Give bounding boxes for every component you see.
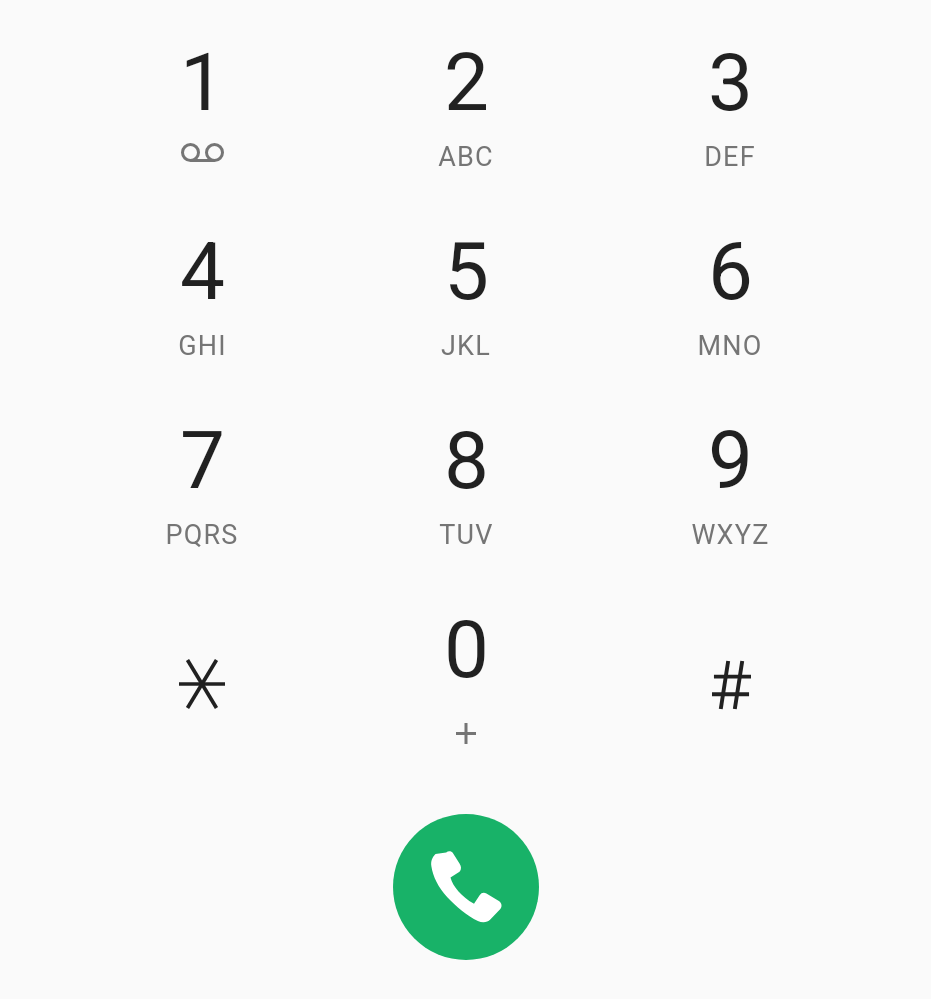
button[interactable]: 1 bbox=[70, 25, 334, 214]
button[interactable]: Pound bbox=[598, 592, 862, 781]
other: Voicemail bbox=[181, 143, 224, 162]
staticText: MNO bbox=[697, 330, 763, 362]
staticText: 9 bbox=[708, 414, 753, 508]
button[interactable]: 3 bbox=[598, 25, 862, 214]
staticText: 5 bbox=[444, 225, 489, 319]
staticText: DEF bbox=[704, 141, 756, 173]
staticText: 2 bbox=[444, 36, 489, 130]
button[interactable]: Call bbox=[393, 814, 539, 960]
staticText: PQRS bbox=[165, 519, 239, 551]
button[interactable]: Star bbox=[70, 592, 334, 781]
other: Star bbox=[179, 660, 225, 708]
staticText: 0 bbox=[444, 603, 489, 697]
staticText: 1 bbox=[180, 36, 225, 130]
staticText: GHI bbox=[178, 330, 227, 362]
button[interactable]: 9 bbox=[598, 403, 862, 592]
button[interactable]: 5 bbox=[334, 214, 598, 403]
other: Pound bbox=[712, 661, 751, 709]
button[interactable]: 6 bbox=[598, 214, 862, 403]
staticText: 7 bbox=[180, 414, 225, 508]
button[interactable]: 2 bbox=[334, 25, 598, 214]
staticText: TUV bbox=[439, 519, 494, 551]
staticText: 4 bbox=[180, 225, 225, 319]
staticText: JKL bbox=[441, 330, 491, 362]
staticText: WXYZ bbox=[691, 519, 770, 551]
button[interactable]: 0 bbox=[334, 592, 598, 781]
staticText: ABC bbox=[438, 141, 494, 173]
button[interactable]: 8 bbox=[334, 403, 598, 592]
button[interactable]: 4 bbox=[70, 214, 334, 403]
staticText: 3 bbox=[708, 36, 753, 130]
staticText: 8 bbox=[444, 414, 489, 508]
button[interactable]: 7 bbox=[70, 403, 334, 592]
other: Plus bbox=[456, 723, 476, 744]
staticText: 6 bbox=[708, 225, 753, 319]
